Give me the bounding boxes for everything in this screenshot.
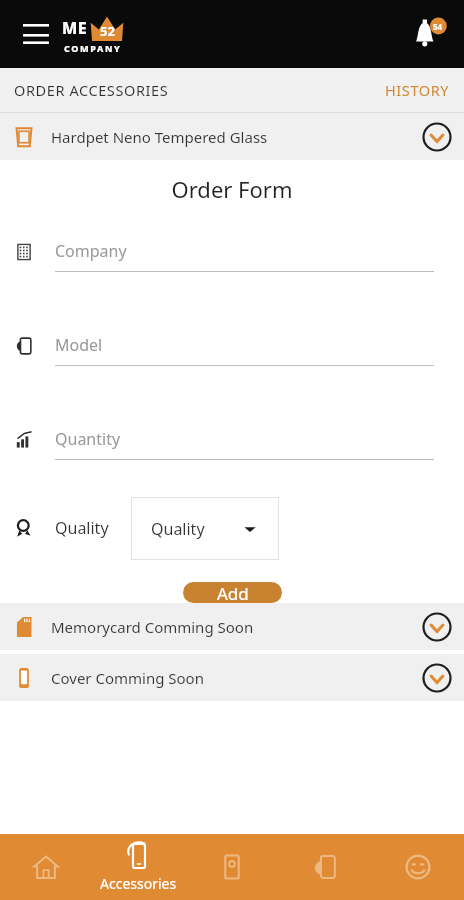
button[interactable]: Quantity (55, 428, 434, 460)
button[interactable]: Home (0, 834, 92, 900)
button[interactable]: Devices (278, 834, 371, 900)
button[interactable]: Model (55, 334, 434, 366)
staticText: HISTORY (385, 80, 450, 100)
staticText: 54 (433, 21, 443, 32)
button[interactable]: Menu (12, 10, 60, 58)
button[interactable]: Hardpet Neno Tempered Glass (0, 113, 464, 160)
staticText: ORDER ACCESSORIES (14, 80, 169, 100)
staticText: Order Form (0, 174, 464, 204)
staticText: Hardpet Neno Tempered Glass (51, 127, 268, 147)
staticText: 52 (100, 22, 115, 40)
staticText: Quantity (55, 428, 121, 450)
button[interactable]: Notifications (400, 6, 456, 62)
button[interactable]: Memorycard Comming Soon (0, 603, 464, 650)
staticText: Quality (151, 518, 205, 540)
button[interactable]: ME (62, 15, 124, 54)
staticText: ME (62, 17, 88, 39)
button[interactable]: Company (55, 240, 434, 272)
staticText: Company (55, 240, 127, 262)
button[interactable]: Profile (371, 834, 464, 900)
staticText: Memorycard Comming Soon (51, 617, 254, 637)
button[interactable]: Accessories (92, 834, 185, 900)
staticText: Cover Comming Soon (51, 668, 204, 688)
button[interactable]: Tablet (185, 834, 278, 900)
staticText: Quality (55, 517, 109, 539)
button[interactable]: Add (183, 582, 282, 603)
button[interactable]: Quality (131, 497, 279, 560)
staticText: Accessories (100, 874, 177, 893)
staticText: Model (55, 334, 103, 356)
button[interactable]: Cover Comming Soon (0, 654, 464, 701)
button[interactable]: HISTORY (371, 68, 464, 112)
staticText: Add (217, 582, 249, 603)
staticText: COMPANY (64, 42, 122, 54)
